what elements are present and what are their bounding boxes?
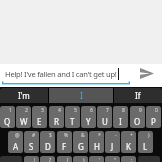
staticText: 4 (58, 107, 61, 114)
staticText: 5 (74, 107, 77, 114)
staticText: I (80, 90, 83, 101)
staticText: 0 (155, 107, 158, 114)
staticText: % (64, 132, 69, 139)
button[interactable]: " (105, 156, 120, 162)
staticText: L (143, 141, 148, 152)
button[interactable]: 6 (81, 106, 96, 128)
button[interactable]: ? (40, 156, 55, 162)
button[interactable]: @ (8, 131, 23, 153)
staticText: W (20, 116, 28, 127)
button[interactable]: I'm (0, 88, 48, 103)
staticText: J (111, 141, 114, 152)
button[interactable]: $ (40, 131, 55, 153)
staticText: + (130, 132, 133, 139)
button[interactable]: ! (24, 156, 39, 162)
staticText: ( (67, 157, 69, 162)
button[interactable]: ' (89, 156, 104, 162)
staticText: A (13, 141, 19, 152)
button[interactable]: If (114, 88, 162, 103)
staticText: Y (86, 116, 91, 127)
button[interactable]: ( (57, 156, 72, 162)
staticText: ' (99, 157, 101, 162)
staticText: F (62, 141, 67, 152)
staticText: 8 (122, 107, 125, 114)
staticText: # (32, 132, 36, 139)
staticText: O (134, 116, 141, 127)
staticText: G (78, 141, 84, 152)
staticText: 7 (106, 107, 109, 114)
staticText: $ (49, 132, 52, 139)
staticText: Help! I've fallen and I can't get up! (5, 69, 117, 79)
staticText: ? (49, 157, 52, 162)
button[interactable]: ) (138, 131, 153, 153)
button[interactable]: 2 (16, 106, 31, 128)
staticText: * (98, 132, 101, 139)
button[interactable]: Backspace (138, 156, 160, 162)
button[interactable]: & (73, 131, 88, 153)
staticText: E (37, 116, 42, 127)
button[interactable]: # (24, 131, 39, 153)
button[interactable]: - (105, 131, 120, 153)
button[interactable]: + (121, 131, 136, 153)
staticText: I'm (18, 90, 30, 101)
button[interactable]: 4 (49, 106, 64, 128)
staticText: 1 (9, 107, 12, 114)
staticText: ) (148, 132, 150, 139)
staticText: 3 (41, 107, 44, 114)
staticText: S (29, 141, 34, 152)
staticText: U (102, 116, 108, 127)
staticText: 9 (139, 107, 142, 114)
button[interactable]: 3 (32, 106, 47, 128)
staticText: 6 (90, 107, 93, 114)
button[interactable]: I (49, 88, 113, 103)
staticText: H (94, 141, 100, 152)
staticText: ) (83, 157, 85, 162)
staticText: I (119, 116, 122, 127)
staticText: 2 (25, 107, 28, 114)
button[interactable]: Help! I've fallen and I can't get up! (0, 64, 130, 83)
staticText: If (135, 90, 141, 101)
staticText: R (54, 116, 59, 127)
button[interactable]: 0 (146, 106, 161, 128)
staticText: ! (34, 157, 36, 162)
button[interactable]: Shift (0, 156, 22, 162)
button[interactable]: 9 (130, 106, 145, 128)
button[interactable]: : (121, 156, 136, 162)
button[interactable]: Send (130, 64, 162, 83)
staticText: - (115, 132, 117, 139)
button[interactable]: % (57, 131, 72, 153)
staticText: & (81, 132, 85, 139)
staticText: T (70, 116, 75, 127)
staticText: D (45, 141, 51, 152)
button[interactable]: 7 (97, 106, 112, 128)
button[interactable]: * (89, 131, 104, 153)
staticText: Q (4, 116, 11, 127)
staticText: " (114, 157, 117, 162)
staticText: K (126, 141, 131, 152)
button[interactable]: 1 (0, 106, 15, 128)
button[interactable]: ) (73, 156, 88, 162)
staticText: @ (15, 132, 20, 139)
staticText: : (131, 157, 133, 162)
button[interactable]: 8 (113, 106, 128, 128)
button[interactable]: 5 (65, 106, 80, 128)
staticText: P (151, 116, 156, 127)
